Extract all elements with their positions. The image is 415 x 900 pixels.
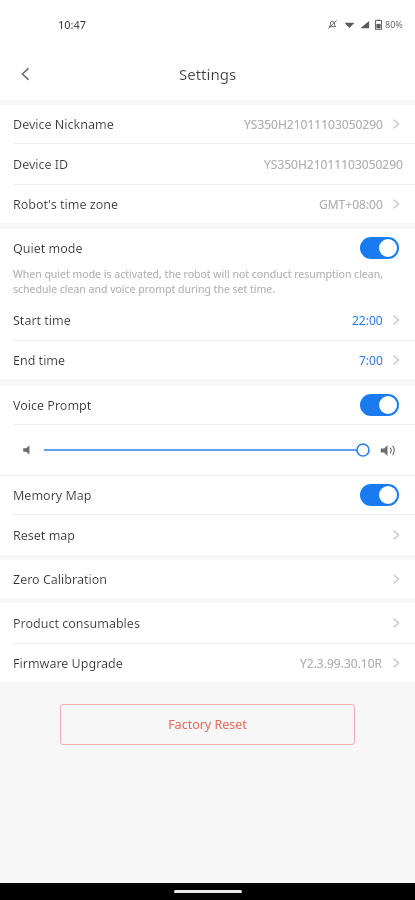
staticText: GMT+08:00 xyxy=(319,196,383,212)
staticText: YS350H21011103050290 xyxy=(264,156,403,172)
button[interactable]: Voice Prompt xyxy=(0,386,415,424)
staticText: End time xyxy=(13,352,66,369)
button[interactable]: Product consumables xyxy=(0,603,415,644)
button[interactable]: Memory Map xyxy=(0,476,415,514)
staticText: 22:00 xyxy=(352,312,383,328)
staticText: Reset map xyxy=(13,527,76,544)
staticText: Device Nickname xyxy=(13,116,114,133)
staticText: Product consumables xyxy=(13,615,140,632)
staticText: Memory Map xyxy=(13,487,92,504)
button[interactable]: Device Nickname xyxy=(0,105,415,144)
button[interactable]: Quiet mode xyxy=(0,229,415,267)
staticText: Quiet mode xyxy=(13,240,83,257)
staticText: Zero Calibration xyxy=(13,571,107,588)
staticText: Voice Prompt xyxy=(13,397,92,414)
button[interactable]: Zero Calibration xyxy=(0,560,415,598)
staticText: Start time xyxy=(13,312,71,329)
button[interactable]: Volume xyxy=(44,438,370,462)
staticText: 7:00 xyxy=(359,352,383,368)
staticText: Settings xyxy=(179,64,237,84)
staticText: YS350H21011103050290 xyxy=(244,116,383,132)
staticText: When quiet mode is activated, the robot … xyxy=(13,267,395,296)
staticText: Factory Reset xyxy=(168,716,247,733)
button[interactable]: Start time xyxy=(0,300,415,341)
button[interactable]: Factory Reset xyxy=(60,704,355,745)
staticText: Y2.3.99.30.10R xyxy=(300,655,383,671)
button[interactable]: Voice Prompt xyxy=(360,394,399,416)
button[interactable]: Reset map xyxy=(0,515,415,555)
button[interactable]: Back xyxy=(8,56,44,92)
staticText: Robot's time zone xyxy=(13,196,118,213)
button[interactable]: Robot's time zone xyxy=(0,185,415,223)
button[interactable]: Firmware Upgrade xyxy=(0,644,415,682)
staticText: 80% xyxy=(385,18,403,30)
button[interactable]: Memory Map xyxy=(360,484,399,506)
staticText: Firmware Upgrade xyxy=(13,655,123,672)
button[interactable]: End time xyxy=(0,341,415,379)
button[interactable]: Device ID xyxy=(0,144,415,185)
staticText: 10:47 xyxy=(58,17,87,32)
staticText: Device ID xyxy=(13,156,69,173)
button[interactable]: Quiet mode xyxy=(360,237,399,259)
